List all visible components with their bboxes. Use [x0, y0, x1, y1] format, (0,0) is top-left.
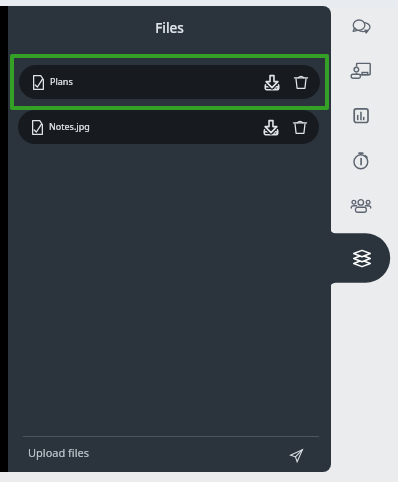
button[interactable]: Plans — [19, 65, 320, 99]
button[interactable]: Plans — [18, 66, 319, 100]
button[interactable]: Download — [258, 70, 284, 96]
button[interactable]: Delete — [287, 114, 313, 140]
staticText: Notes.jpg — [49, 120, 90, 132]
button[interactable]: Send — [284, 443, 308, 467]
button[interactable]: Upload files — [28, 445, 90, 460]
button[interactable]: Delete — [287, 70, 313, 96]
button[interactable]: Delete — [288, 69, 314, 95]
staticText: Plans — [49, 76, 72, 88]
button[interactable]: Timer — [343, 144, 379, 180]
button[interactable]: Chat — [343, 8, 379, 44]
button[interactable]: Polls — [343, 98, 379, 134]
button[interactable]: Layers — [330, 233, 391, 283]
staticText: Plans — [50, 75, 73, 87]
button[interactable]: Present — [343, 53, 379, 89]
staticText: Files — [8, 19, 331, 37]
button[interactable]: Download — [259, 69, 285, 95]
button[interactable]: Notes.jpg — [18, 110, 319, 144]
button[interactable]: Download — [258, 114, 284, 140]
button[interactable]: Participants — [343, 188, 379, 224]
